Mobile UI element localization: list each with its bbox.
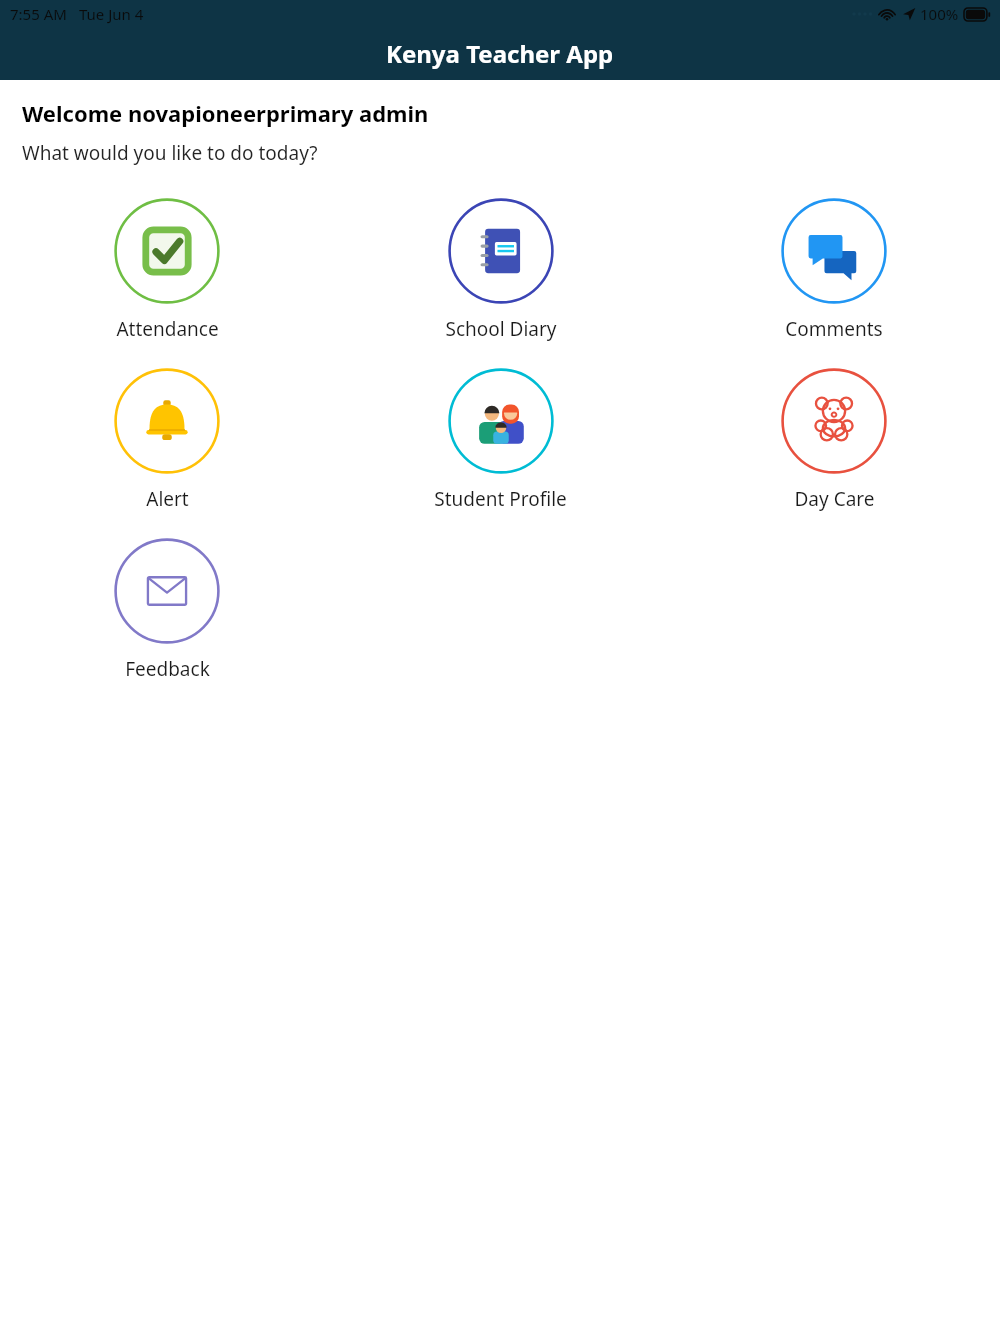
button[interactable]: Comments xyxy=(773,194,895,346)
staticText: Kenya Teacher App xyxy=(386,37,614,70)
staticText: Tue Jun 4 xyxy=(79,4,144,24)
button[interactable]: Student Profile xyxy=(426,364,575,516)
staticText: 100% xyxy=(920,4,959,24)
staticText: Feedback xyxy=(125,656,210,682)
button[interactable]: Alert xyxy=(106,364,228,516)
staticText: Welcome novapioneerprimary admin xyxy=(22,98,429,128)
button[interactable]: Attendance xyxy=(106,194,228,346)
staticText: What would you like to do today? xyxy=(22,140,318,166)
button[interactable]: School Diary xyxy=(437,194,565,346)
staticText: 7:55 AM xyxy=(10,4,67,24)
staticText: Alert xyxy=(146,486,189,512)
staticText: Day Care xyxy=(794,486,875,512)
staticText: Comments xyxy=(785,316,883,342)
button[interactable]: Day Care xyxy=(773,364,895,516)
staticText: Attendance xyxy=(116,316,219,342)
staticText: School Diary xyxy=(445,316,557,342)
staticText: Student Profile xyxy=(434,486,567,512)
button[interactable]: Feedback xyxy=(106,534,228,686)
